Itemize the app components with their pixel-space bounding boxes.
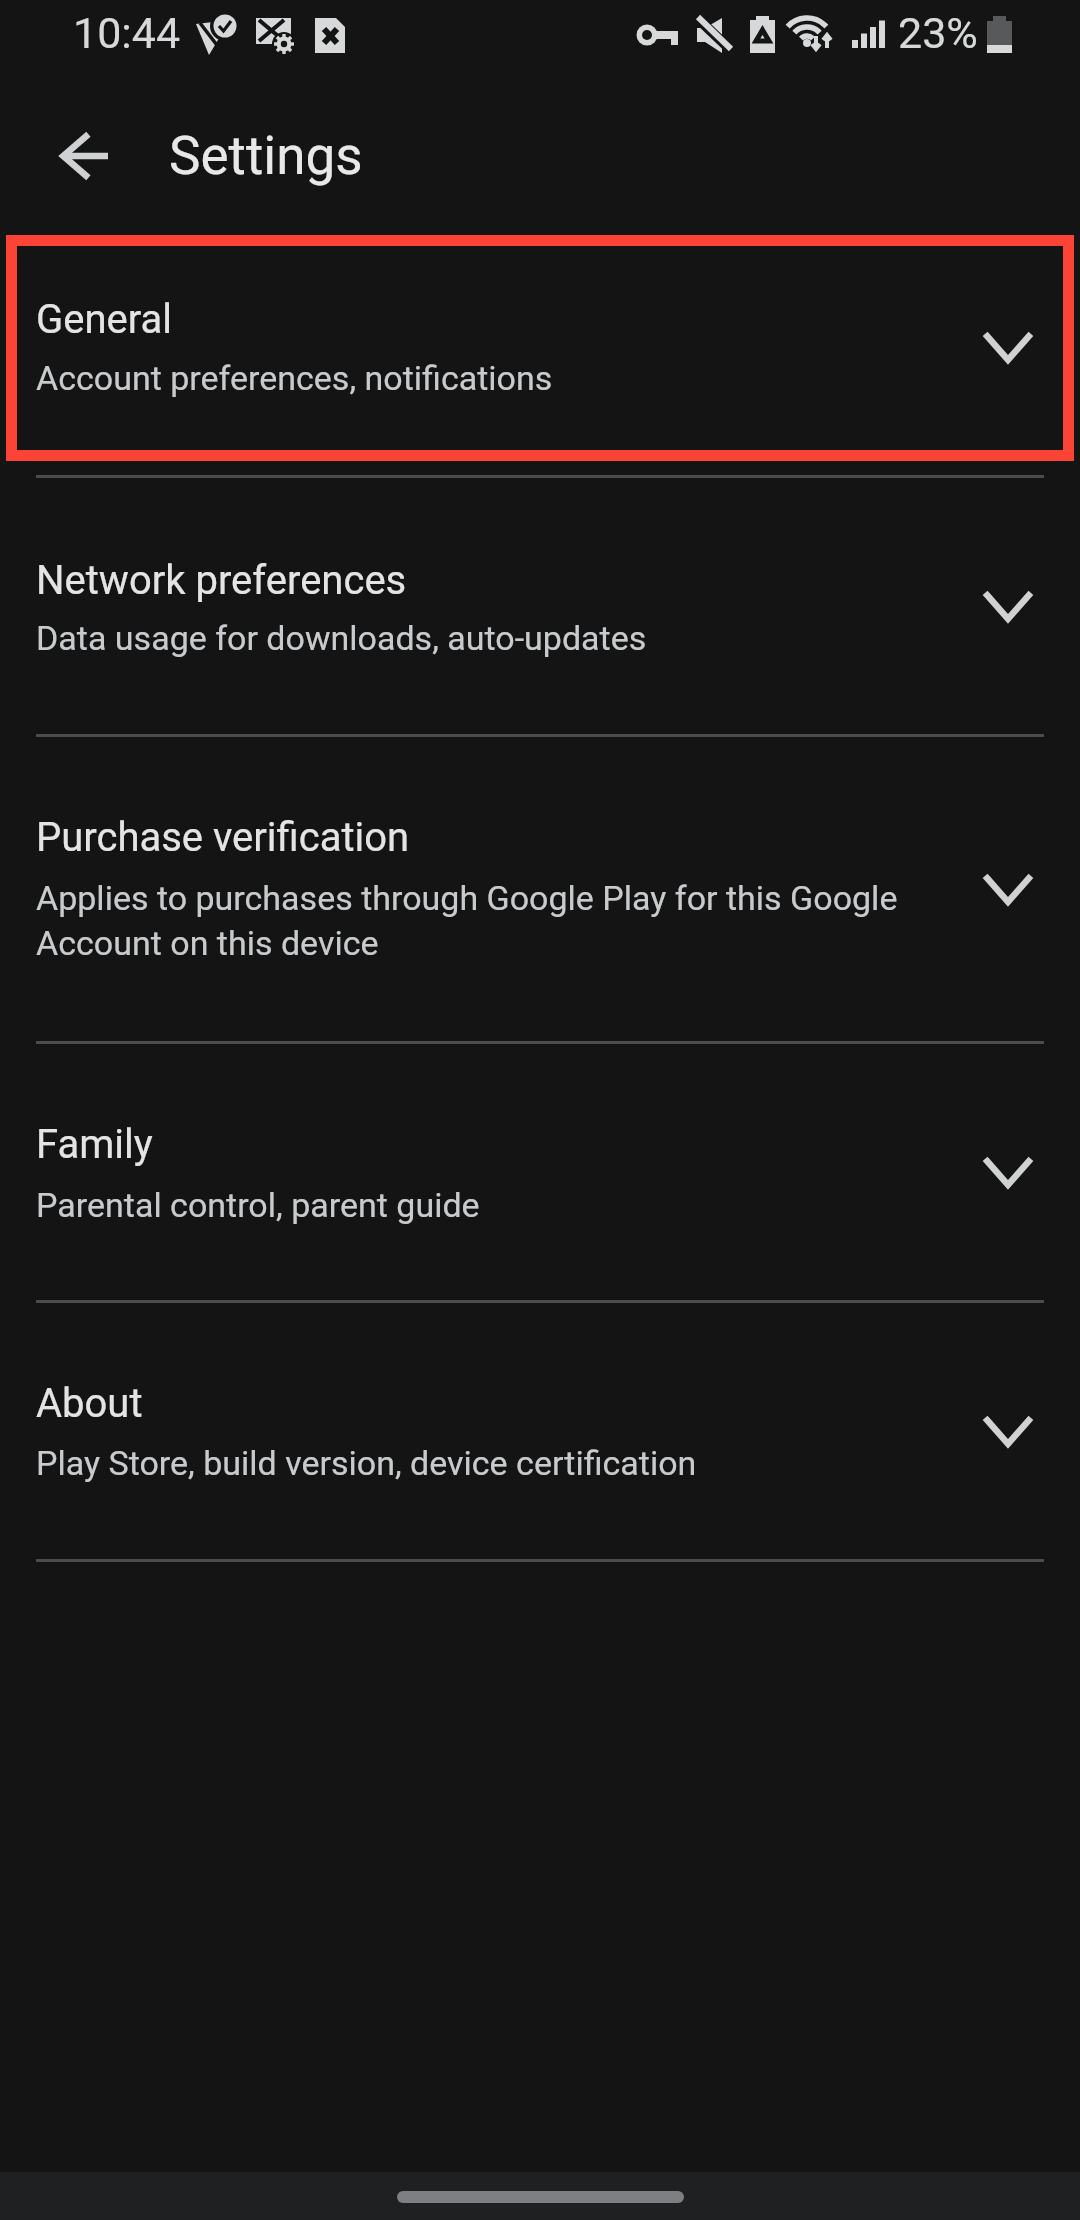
staticText: Account preferences, notifications bbox=[36, 358, 553, 398]
button[interactable]: Purchase verification bbox=[0, 735, 1080, 1041]
staticText: Settings bbox=[169, 125, 363, 187]
button[interactable]: Expand bbox=[960, 559, 1056, 655]
staticText: Purchase verification bbox=[36, 814, 410, 861]
staticText: 10:44 bbox=[73, 8, 181, 58]
staticText: Parental control, parent guide bbox=[36, 1185, 480, 1225]
staticText: About bbox=[36, 1380, 143, 1427]
staticText: Network preferences bbox=[36, 557, 407, 604]
button[interactable]: Expand bbox=[960, 1384, 1056, 1480]
button[interactable]: Family bbox=[0, 1042, 1080, 1300]
staticText: Data usage for downloads, auto-updates bbox=[36, 618, 647, 658]
button[interactable]: Back bbox=[36, 108, 132, 204]
button[interactable]: Expand bbox=[960, 300, 1056, 396]
button[interactable]: Network preferences bbox=[0, 476, 1080, 734]
button[interactable]: Expand bbox=[960, 1125, 1056, 1221]
staticText: Play Store, build version, device certif… bbox=[36, 1443, 697, 1483]
staticText: General bbox=[36, 296, 173, 343]
staticText: 23% bbox=[898, 8, 978, 58]
staticText: Family bbox=[36, 1121, 153, 1168]
staticText: Applies to purchases through Google Play… bbox=[36, 878, 946, 963]
button[interactable]: General bbox=[0, 235, 1080, 461]
button[interactable]: About bbox=[0, 1301, 1080, 1559]
button[interactable]: Expand bbox=[960, 842, 1056, 938]
